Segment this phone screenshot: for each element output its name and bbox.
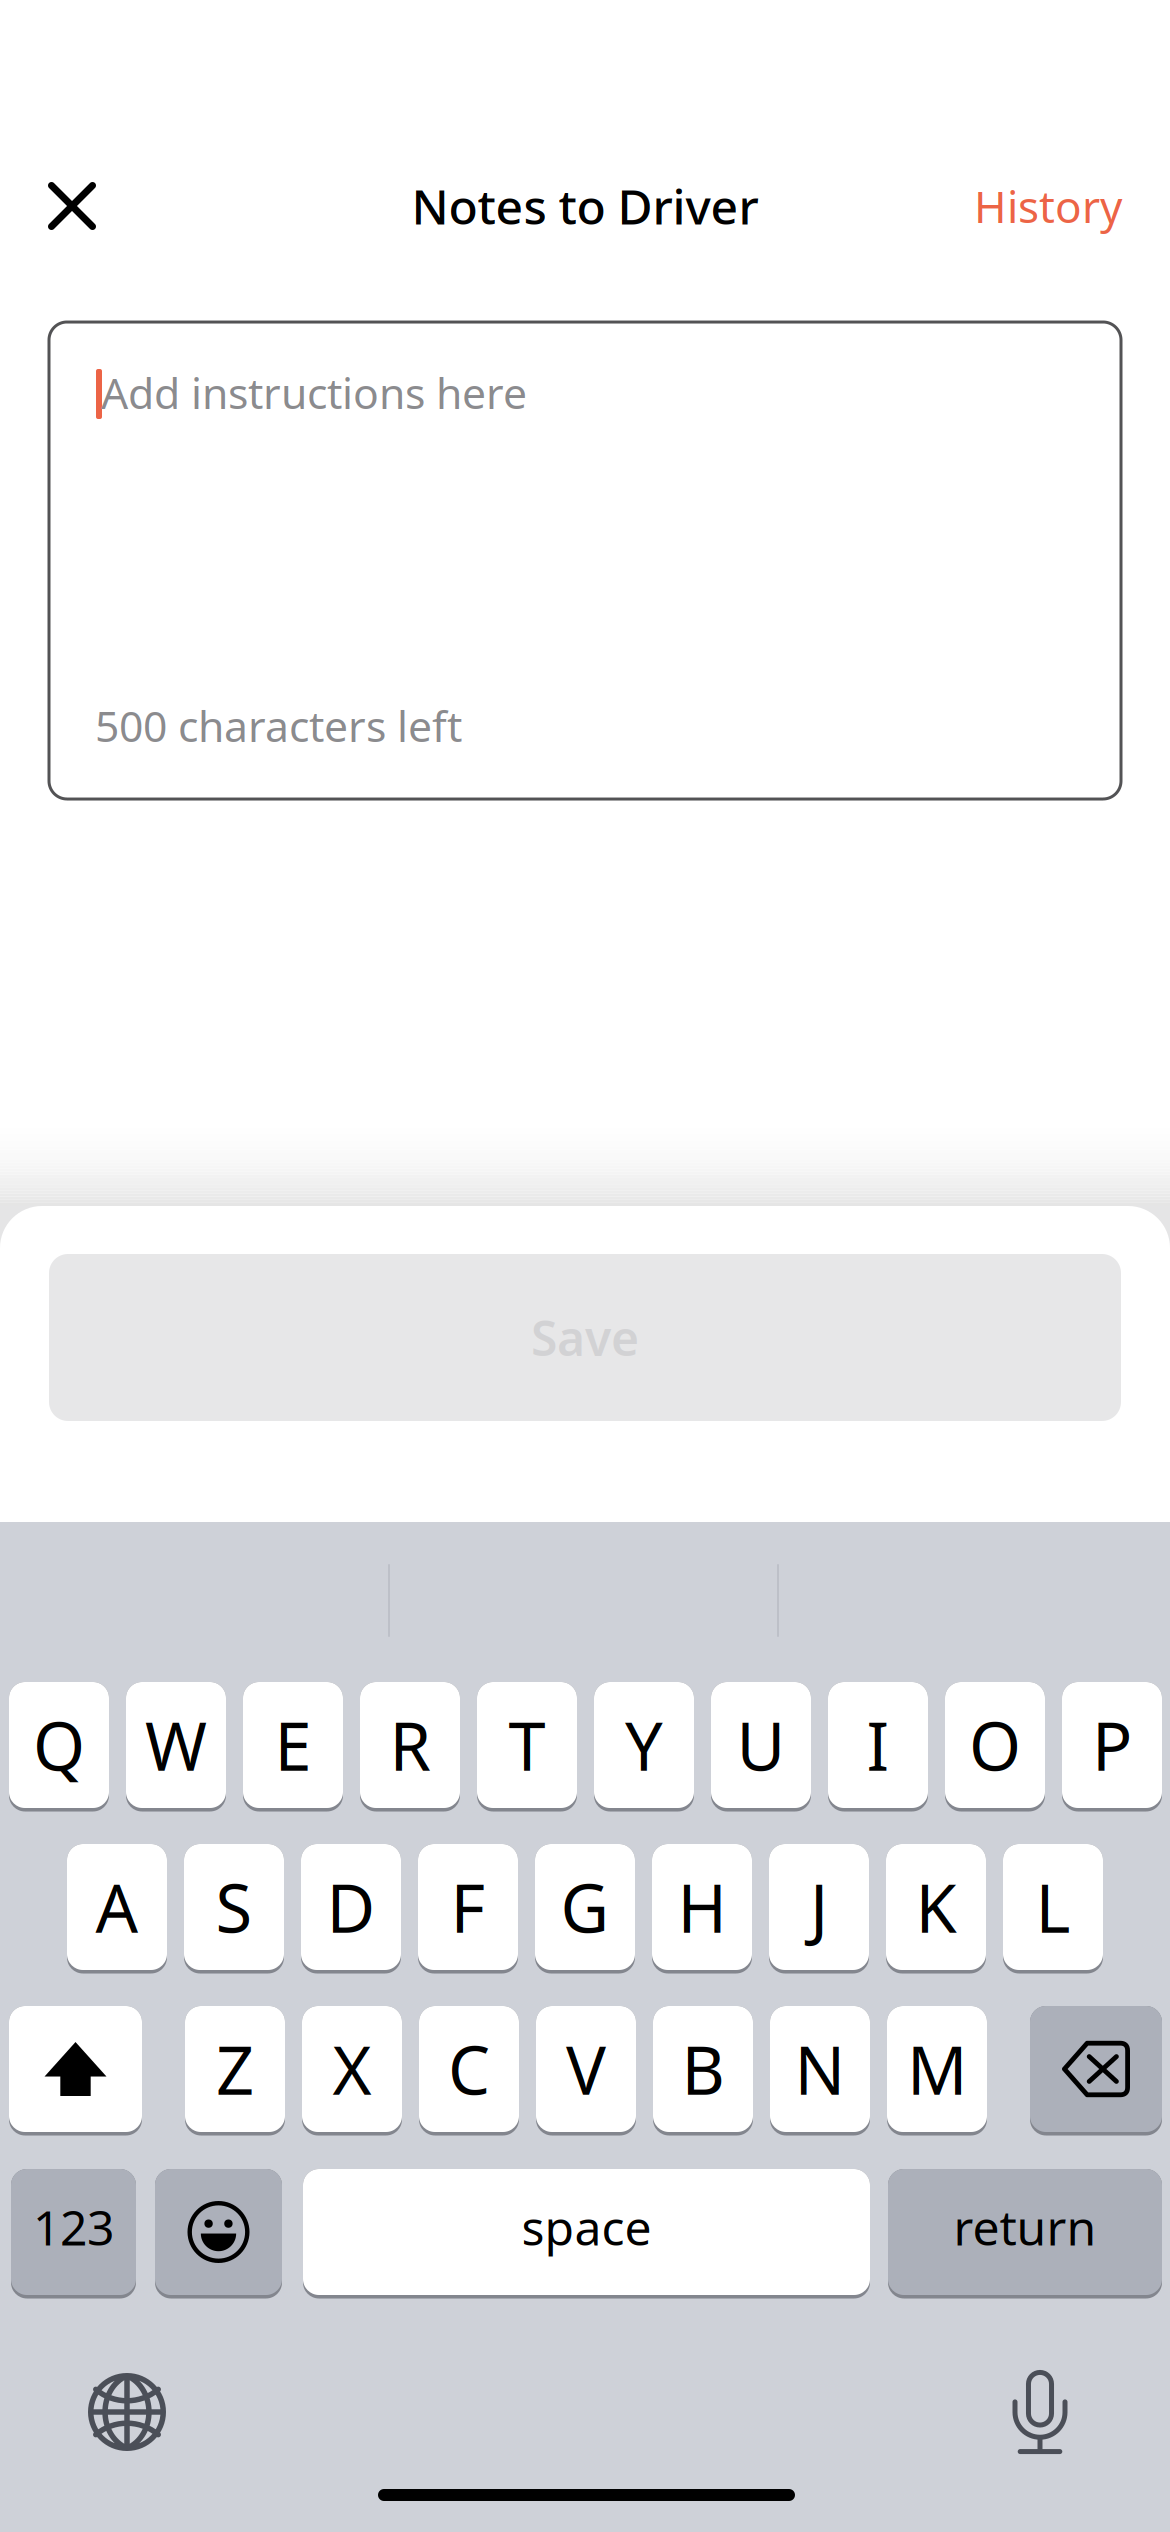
staticText: Q	[33, 1701, 85, 1789]
button[interactable]: D	[301, 1844, 401, 1973]
button[interactable]: C	[419, 2006, 519, 2135]
button[interactable]: A	[67, 1844, 167, 1973]
button[interactable]: K	[886, 1844, 986, 1973]
button[interactable]: B	[653, 2006, 753, 2135]
button[interactable]: V	[536, 2006, 636, 2135]
staticText: Y	[625, 1701, 663, 1789]
button[interactable]: M	[887, 2006, 987, 2135]
button[interactable]: Y	[594, 1682, 694, 1811]
staticText: 123	[33, 2195, 114, 2259]
button[interactable]: T	[477, 1682, 577, 1811]
staticText: E	[274, 1701, 311, 1789]
button[interactable]: O	[945, 1682, 1045, 1811]
staticText: V	[566, 2025, 606, 2113]
button[interactable]: Close	[24, 158, 120, 254]
button[interactable]: E	[243, 1682, 343, 1811]
button[interactable]: X	[302, 2006, 402, 2135]
staticText: U	[736, 1701, 785, 1789]
staticText: X	[332, 2025, 371, 2113]
button[interactable]: N	[770, 2006, 870, 2135]
button[interactable]: Emoji	[155, 2169, 282, 2298]
staticText: return	[953, 2195, 1096, 2259]
staticText: T	[508, 1701, 545, 1789]
button[interactable]: U	[711, 1682, 811, 1811]
staticText: 500 characters left	[95, 697, 462, 754]
staticText: W	[145, 1701, 207, 1789]
button[interactable]: return	[888, 2169, 1162, 2298]
staticText: I	[866, 1701, 889, 1789]
staticText: S	[215, 1863, 252, 1951]
button[interactable]: I	[828, 1682, 928, 1811]
staticText: D	[326, 1863, 375, 1951]
staticText: H	[677, 1863, 726, 1951]
button[interactable]: Delete	[1030, 2006, 1162, 2135]
staticText: F	[450, 1863, 485, 1951]
button[interactable]: History	[902, 158, 1122, 254]
staticText: space	[521, 2195, 651, 2259]
staticText: C	[448, 2025, 490, 2113]
button[interactable]: H	[652, 1844, 752, 1973]
button[interactable]: G	[535, 1844, 635, 1973]
button[interactable]: Next keyboard	[67, 2352, 187, 2472]
button[interactable]: L	[1003, 1844, 1103, 1973]
staticText: Add instructions here	[101, 364, 527, 421]
staticText: G	[560, 1863, 609, 1951]
staticText: A	[95, 1863, 138, 1951]
staticText: Save	[531, 1306, 639, 1369]
button[interactable]: J	[769, 1844, 869, 1973]
button[interactable]: Shift	[9, 2006, 142, 2135]
button[interactable]: W	[126, 1682, 226, 1811]
button[interactable]: Q	[9, 1682, 109, 1811]
button[interactable]: R	[360, 1682, 460, 1811]
button[interactable]: 123	[11, 2169, 136, 2298]
button[interactable]: Add instructions here	[49, 322, 1121, 799]
staticText: K	[915, 1863, 956, 1951]
button[interactable]: P	[1062, 1682, 1162, 1811]
staticText: O	[969, 1701, 1021, 1789]
button[interactable]: Dictation	[980, 2352, 1100, 2472]
staticText: Z	[216, 2025, 254, 2113]
staticText: Notes to Driver	[411, 174, 758, 238]
button[interactable]: F	[418, 1844, 518, 1973]
staticText: M	[907, 2025, 967, 2113]
staticText: N	[794, 2025, 845, 2113]
button[interactable]: space	[303, 2169, 870, 2298]
staticText: L	[1035, 1863, 1070, 1951]
staticText: History	[974, 177, 1122, 235]
staticText: J	[810, 1863, 828, 1951]
button[interactable]: Z	[185, 2006, 285, 2135]
staticText: P	[1092, 1701, 1132, 1789]
staticText: B	[681, 2025, 724, 2113]
button[interactable]: S	[184, 1844, 284, 1973]
staticText: R	[389, 1701, 430, 1789]
